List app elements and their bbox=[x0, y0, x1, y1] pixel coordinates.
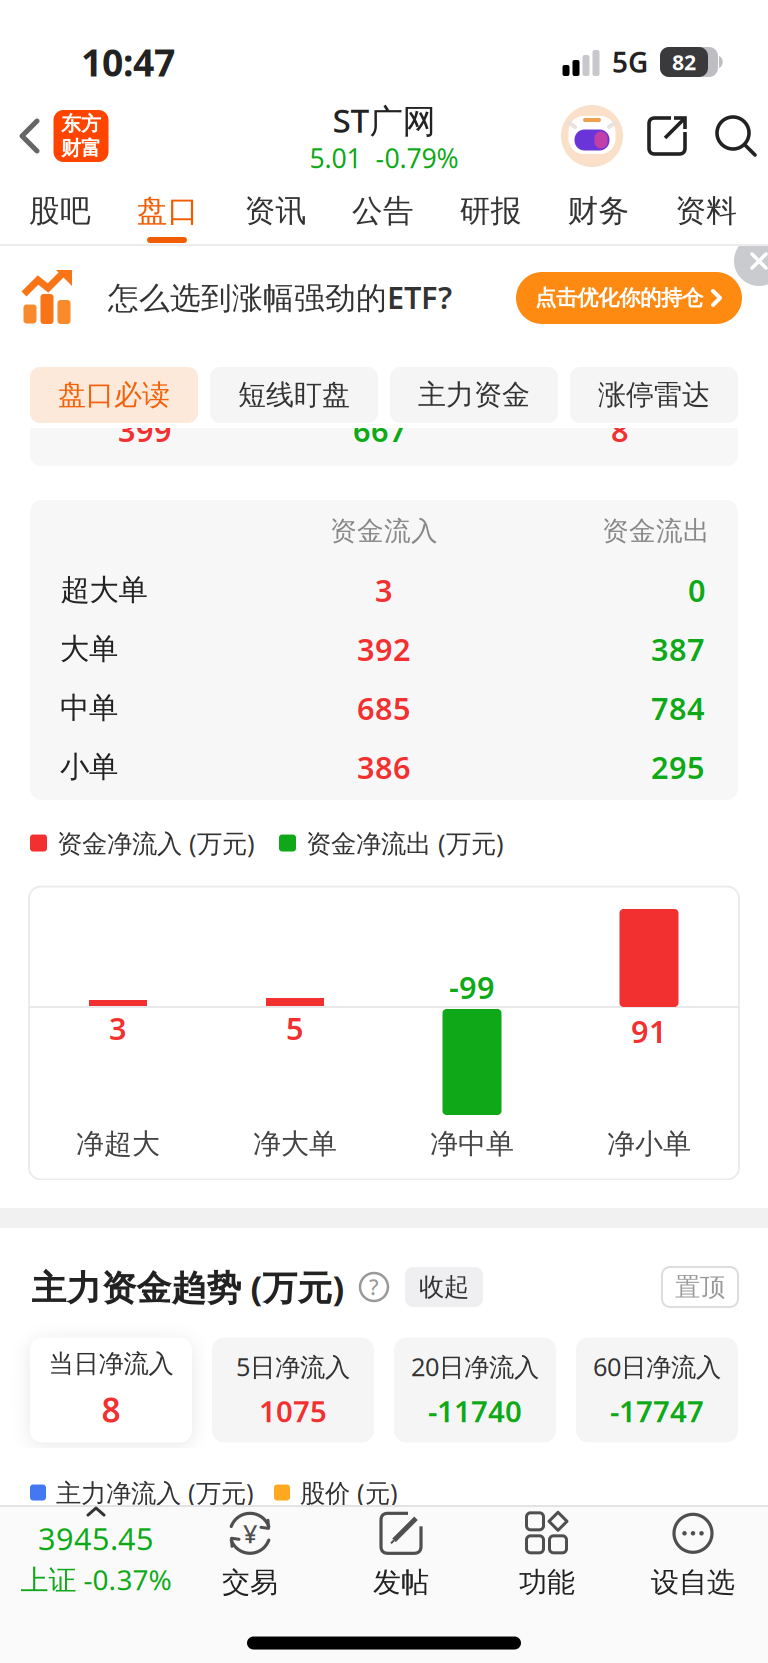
staticText: 功能 bbox=[519, 1565, 575, 1600]
button[interactable]: 3945.45 bbox=[20, 1508, 171, 1598]
staticText: 主力资金 bbox=[418, 378, 530, 412]
button[interactable]: 资料 bbox=[675, 192, 737, 230]
staticText: 中单 bbox=[60, 690, 118, 726]
staticText: 涨停雷达 bbox=[598, 378, 710, 412]
staticText: -11740 bbox=[428, 1391, 522, 1430]
button[interactable]: 东方财富 bbox=[53, 110, 108, 162]
button[interactable]: 智能助手 bbox=[561, 105, 623, 167]
staticText: 685 bbox=[357, 688, 411, 728]
staticText: 667 bbox=[353, 410, 407, 450]
staticText: 8 bbox=[611, 410, 629, 450]
button[interactable]: 涨停雷达 bbox=[570, 367, 738, 423]
button[interactable]: Back bbox=[20, 119, 40, 153]
staticText: 60日净流入 bbox=[593, 1350, 721, 1383]
button[interactable]: 资讯 bbox=[244, 192, 306, 230]
staticText: 3 bbox=[375, 570, 393, 610]
button[interactable]: 主力资金 bbox=[390, 367, 558, 423]
staticText: 小单 bbox=[60, 749, 118, 785]
staticText: 当日净流入 bbox=[48, 1348, 173, 1379]
staticText: 净小单 bbox=[607, 1127, 691, 1161]
staticText: 82 bbox=[672, 48, 696, 76]
button[interactable]: 公告 bbox=[352, 192, 414, 230]
staticText: 资金流入 bbox=[330, 515, 438, 547]
staticText: 主力净流入 (万元) bbox=[56, 1476, 254, 1509]
staticText: 置顶 bbox=[675, 1271, 725, 1302]
staticText: 5.01 -0.79% bbox=[309, 140, 458, 176]
staticText: 387 bbox=[651, 629, 705, 669]
button[interactable]: 盘口 bbox=[137, 192, 199, 230]
button[interactable]: 股吧 bbox=[29, 192, 91, 230]
staticText: 8 bbox=[101, 1387, 120, 1432]
staticText: 净超大 bbox=[76, 1127, 160, 1161]
staticText: 财务 bbox=[567, 192, 629, 230]
button[interactable]: 盘口必读 bbox=[30, 367, 198, 423]
staticText: 3945.45 bbox=[38, 1518, 154, 1559]
button[interactable]: 帮助 bbox=[360, 1273, 388, 1301]
staticText: 点击优化你的持仓 bbox=[535, 285, 703, 311]
staticText: 5 bbox=[286, 1008, 304, 1048]
staticText: 784 bbox=[651, 688, 705, 728]
staticText: 资金流出 bbox=[602, 515, 710, 547]
button[interactable]: 财务 bbox=[567, 192, 629, 230]
button[interactable]: 功能 bbox=[519, 1510, 575, 1600]
staticText: ST广网 bbox=[332, 98, 435, 142]
button[interactable]: Close bbox=[734, 236, 768, 286]
staticText: 大单 bbox=[60, 631, 118, 667]
button[interactable]: 5日净流入 bbox=[212, 1337, 374, 1442]
button[interactable]: 设自选 bbox=[651, 1510, 735, 1600]
button[interactable]: Search bbox=[714, 114, 758, 158]
button[interactable]: 收起 bbox=[405, 1267, 483, 1307]
staticText: 净大单 bbox=[253, 1127, 337, 1161]
button[interactable]: 短线盯盘 bbox=[210, 367, 378, 423]
staticText: 发帖 bbox=[373, 1565, 429, 1600]
staticText: -99 bbox=[449, 967, 495, 1007]
staticText: 386 bbox=[357, 747, 411, 787]
staticText: 资金净流入 (万元) bbox=[57, 826, 255, 860]
staticText: 设自选 bbox=[651, 1565, 735, 1600]
staticText: 295 bbox=[651, 747, 705, 787]
staticText: 91 bbox=[631, 1011, 667, 1051]
button[interactable]: ¥ bbox=[222, 1510, 278, 1600]
staticText: 研报 bbox=[460, 192, 522, 230]
button[interactable]: 置顶 bbox=[662, 1267, 738, 1307]
staticText: 1075 bbox=[259, 1391, 327, 1430]
staticText: 短线盯盘 bbox=[238, 378, 350, 412]
button[interactable]: 点击优化你的持仓 bbox=[516, 272, 742, 324]
staticText: 股价 (元) bbox=[300, 1476, 398, 1509]
staticText: 怎么选到涨幅强劲的ETF? bbox=[108, 277, 452, 317]
staticText: 上证 -0.37% bbox=[20, 1561, 171, 1598]
staticText: 392 bbox=[357, 629, 411, 669]
staticText: 资金净流出 (万元) bbox=[306, 826, 504, 860]
button[interactable]: 发帖 bbox=[373, 1510, 429, 1600]
staticText: 资料 bbox=[675, 192, 737, 230]
button[interactable]: 研报 bbox=[460, 192, 522, 230]
staticText: 盘口 bbox=[137, 192, 199, 230]
button[interactable]: 20日净流入 bbox=[394, 1337, 556, 1442]
staticText: 股吧 bbox=[29, 192, 91, 230]
staticText: 5G bbox=[612, 43, 648, 81]
staticText: 超大单 bbox=[60, 572, 147, 608]
staticText: 东方 bbox=[61, 111, 101, 136]
staticText: ? bbox=[369, 1273, 379, 1301]
button[interactable]: 60日净流入 bbox=[576, 1337, 738, 1442]
staticText: 公告 bbox=[352, 192, 414, 230]
button[interactable]: Share bbox=[645, 114, 689, 158]
staticText: 主力资金趋势 (万元) bbox=[31, 1264, 344, 1310]
staticText: 盘口必读 bbox=[58, 378, 170, 412]
staticText: 净中单 bbox=[430, 1127, 514, 1161]
staticText: 交易 bbox=[222, 1565, 278, 1600]
staticText: 财富 bbox=[61, 136, 101, 161]
staticText: ¥ bbox=[243, 1516, 257, 1550]
button[interactable]: 当日净流入 bbox=[30, 1337, 192, 1442]
staticText: 20日净流入 bbox=[411, 1350, 539, 1383]
staticText: 399 bbox=[118, 410, 172, 450]
staticText: 5日净流入 bbox=[236, 1350, 350, 1383]
staticText: -17747 bbox=[610, 1391, 704, 1430]
staticText: 10:47 bbox=[81, 37, 175, 87]
staticText: 0 bbox=[688, 570, 706, 610]
staticText: 资讯 bbox=[244, 192, 306, 230]
staticText: 3 bbox=[109, 1008, 127, 1048]
staticText: 收起 bbox=[419, 1271, 469, 1302]
